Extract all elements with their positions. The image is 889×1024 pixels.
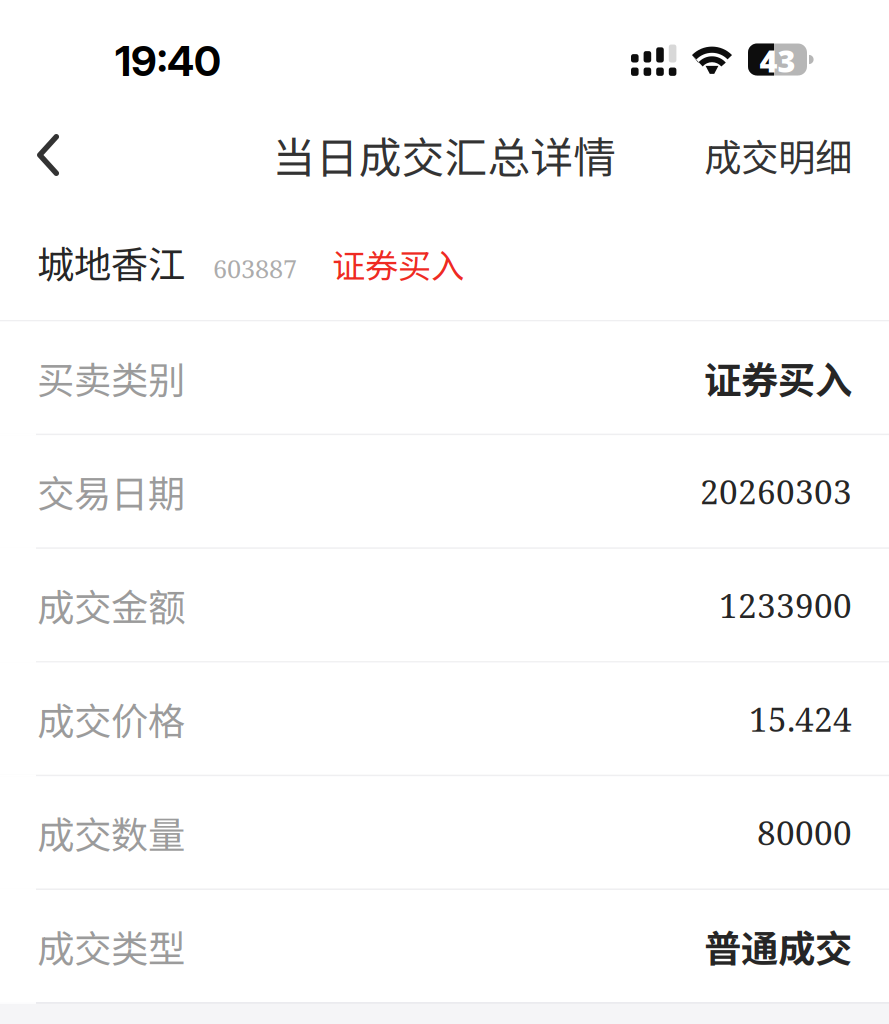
staticText: 80000 [757, 810, 852, 855]
staticText: 成交价格 [37, 692, 185, 746]
staticText: 城地香江 [37, 235, 185, 289]
staticText: 成交金额 [37, 578, 185, 632]
staticText: 当日成交汇总详情 [272, 124, 616, 186]
button[interactable]: 买卖类别 [0, 321, 889, 434]
staticText: 1233900 [719, 582, 852, 628]
staticText: 买卖类别 [37, 351, 185, 405]
staticText: 19:40 [115, 36, 221, 86]
staticText: 证券买入 [332, 240, 464, 288]
button[interactable]: 成交数量 [0, 776, 889, 888]
staticText: 603887 [213, 251, 297, 286]
button[interactable]: 交易日期 [0, 435, 889, 547]
staticText: 成交数量 [37, 805, 185, 859]
staticText: 成交明细 [704, 128, 852, 182]
staticText: 15.424 [749, 696, 852, 741]
button[interactable]: 成交类型 [0, 890, 889, 1002]
staticText: 普通成交 [704, 919, 852, 973]
staticText: 成交类型 [37, 919, 185, 973]
button[interactable]: Back [14, 110, 82, 200]
button[interactable]: 成交价格 [0, 663, 889, 775]
staticText: 20260303 [700, 469, 852, 514]
button[interactable]: 成交明细 [686, 106, 870, 204]
staticText: 43 [759, 40, 795, 81]
staticText: 交易日期 [37, 464, 185, 518]
button[interactable]: 成交金额 [0, 549, 889, 661]
staticText: 证券买入 [704, 351, 852, 405]
